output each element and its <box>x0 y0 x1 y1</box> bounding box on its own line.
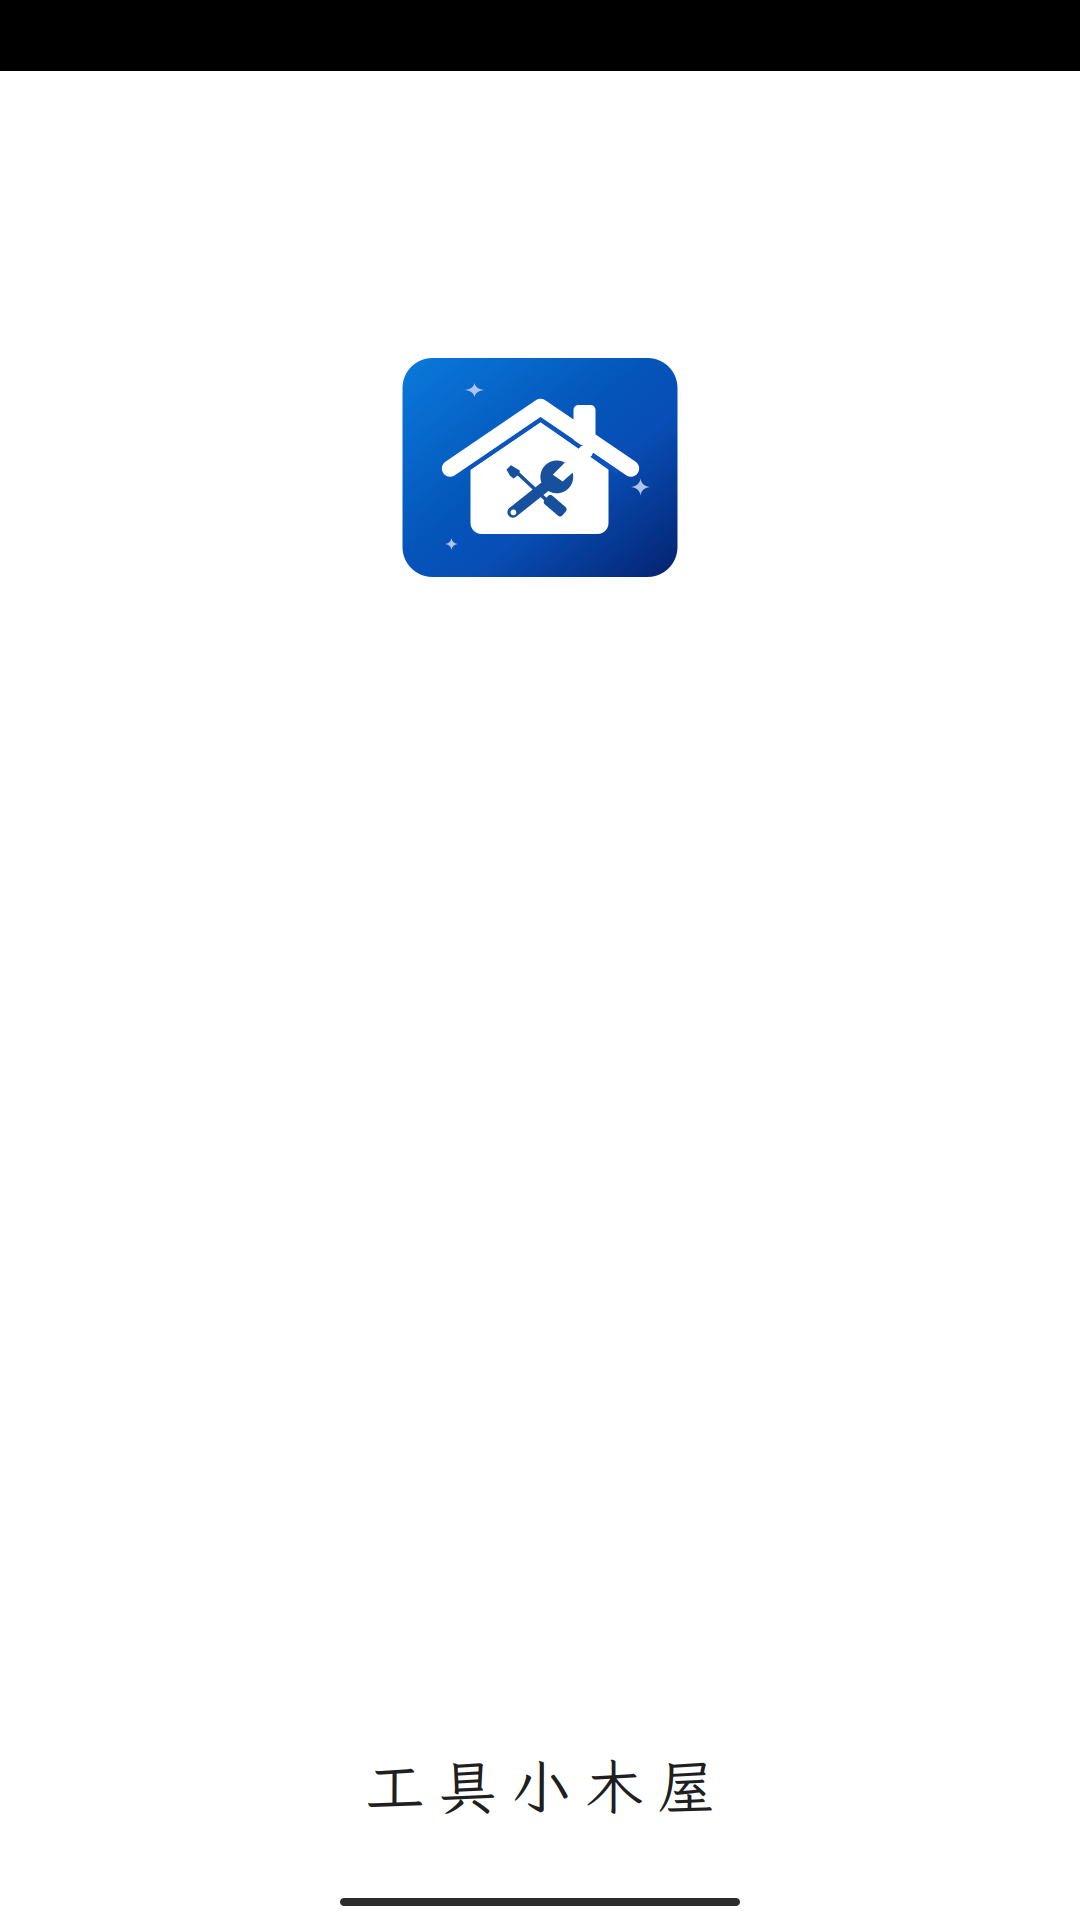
staticText: 工具小木屋 <box>365 1747 716 1825</box>
